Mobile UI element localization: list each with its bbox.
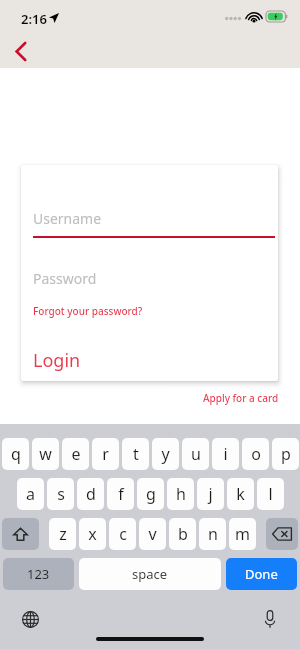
- button[interactable]: l: [257, 478, 284, 510]
- button[interactable]: 123: [3, 558, 74, 590]
- button[interactable]: a: [17, 478, 44, 510]
- button[interactable]: f: [107, 478, 134, 510]
- staticText: Login: [33, 348, 81, 373]
- staticText: r: [102, 443, 109, 465]
- button[interactable]: Username: [21, 209, 278, 238]
- staticText: 123: [27, 565, 50, 583]
- button[interactable]: m: [229, 518, 256, 550]
- staticText: w: [39, 443, 52, 465]
- staticText: a: [26, 483, 35, 505]
- staticText: j: [208, 483, 213, 505]
- button[interactable]: Done: [226, 558, 297, 590]
- staticText: i: [223, 443, 228, 465]
- staticText: g: [146, 483, 156, 505]
- button[interactable]: e: [62, 438, 89, 470]
- staticText: o: [251, 443, 261, 465]
- button[interactable]: x: [79, 518, 106, 550]
- staticText: e: [71, 443, 81, 465]
- staticText: z: [59, 523, 67, 545]
- button[interactable]: Login: [21, 346, 89, 377]
- staticText: h: [176, 483, 186, 505]
- staticText: Forgot your password?: [33, 304, 143, 318]
- button[interactable]: Backspace: [266, 518, 298, 550]
- button[interactable]: Apply for a card: [197, 389, 300, 407]
- button[interactable]: s: [47, 478, 74, 510]
- button[interactable]: k: [227, 478, 254, 510]
- staticText: l: [268, 483, 273, 505]
- button[interactable]: u: [182, 438, 209, 470]
- staticText: 2:16: [21, 10, 47, 28]
- button[interactable]: t: [122, 438, 149, 470]
- staticText: b: [178, 523, 188, 545]
- staticText: k: [236, 483, 245, 505]
- staticText: s: [57, 483, 65, 505]
- button[interactable]: y: [152, 438, 179, 470]
- staticText: f: [118, 483, 124, 505]
- button[interactable]: Forgot your password?: [21, 303, 143, 320]
- staticText: v: [148, 523, 157, 545]
- button[interactable]: space: [79, 558, 221, 590]
- staticText: d: [86, 483, 96, 505]
- staticText: Password: [33, 269, 97, 288]
- staticText: q: [11, 443, 21, 465]
- staticText: n: [208, 523, 218, 545]
- button[interactable]: n: [199, 518, 226, 550]
- staticText: space: [132, 565, 168, 583]
- button[interactable]: v: [139, 518, 166, 550]
- staticText: Done: [245, 565, 278, 583]
- staticText: y: [161, 443, 170, 465]
- button[interactable]: g: [137, 478, 164, 510]
- button[interactable]: Change keyboard language: [16, 605, 44, 633]
- button[interactable]: i: [212, 438, 239, 470]
- button[interactable]: b: [169, 518, 196, 550]
- staticText: u: [191, 443, 201, 465]
- button[interactable]: z: [49, 518, 76, 550]
- button[interactable]: j: [197, 478, 224, 510]
- button[interactable]: Back: [4, 34, 38, 68]
- button[interactable]: q: [2, 438, 29, 470]
- button[interactable]: Dictate: [256, 605, 284, 633]
- staticText: x: [88, 523, 97, 545]
- button[interactable]: h: [167, 478, 194, 510]
- staticText: Apply for a card: [203, 391, 279, 405]
- button[interactable]: p: [272, 438, 299, 470]
- staticText: c: [119, 523, 127, 545]
- button[interactable]: r: [92, 438, 119, 470]
- button[interactable]: w: [32, 438, 59, 470]
- button[interactable]: Password: [21, 269, 278, 288]
- staticText: t: [133, 443, 139, 465]
- button[interactable]: d: [77, 478, 104, 510]
- staticText: m: [235, 523, 250, 545]
- staticText: p: [281, 443, 291, 465]
- button[interactable]: o: [242, 438, 269, 470]
- button[interactable]: c: [109, 518, 136, 550]
- staticText: Username: [33, 209, 102, 228]
- button[interactable]: Shift: [2, 518, 39, 550]
